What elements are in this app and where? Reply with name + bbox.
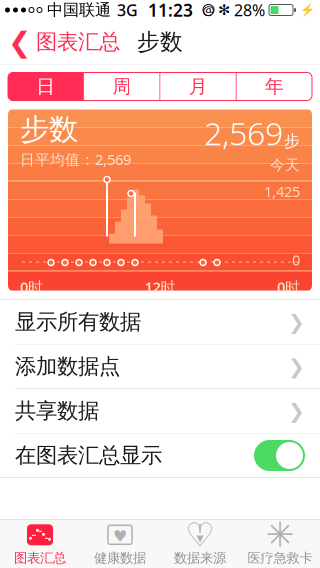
staticText: 图表汇总 (14, 550, 66, 566)
staticText: 医疗急救卡 (247, 550, 312, 566)
staticText: 步 (284, 131, 300, 151)
staticText: 健康数据 (94, 550, 146, 566)
staticText: 今天 (270, 156, 300, 174)
staticText: 日平均值：2,569 (20, 149, 131, 169)
button[interactable]: 年 (237, 72, 312, 100)
staticText: 0时 (277, 277, 300, 296)
staticText: 3G (117, 0, 138, 21)
staticText: 在图表汇总显示 (15, 442, 162, 469)
staticText: ✻ (218, 2, 230, 18)
button[interactable]: 日 (8, 72, 83, 100)
staticText: ♥ (113, 527, 127, 545)
staticText: 步数 (137, 28, 183, 56)
staticText: 中国联通 (47, 0, 111, 20)
staticText: ❯ (288, 311, 305, 333)
staticText: ♡ (185, 516, 215, 554)
button[interactable]: 在图表汇总显示 (0, 433, 320, 477)
staticText: 0 (292, 250, 300, 269)
staticText: 0时 (20, 277, 43, 296)
button[interactable]: ❮ (0, 20, 128, 64)
button[interactable]: 显示所有数据 (0, 300, 320, 344)
staticText: @ (202, 1, 214, 19)
button[interactable]: 医疗急救卡 (240, 520, 320, 568)
button[interactable]: 月 (160, 72, 236, 100)
staticText: ▼ (196, 533, 203, 544)
staticText: 共享数据 (15, 398, 99, 424)
staticText: ❯ (288, 355, 305, 378)
staticText: ⚡ (300, 3, 315, 17)
staticText: 月 (189, 75, 208, 98)
button[interactable]: 添加数据点 (0, 344, 320, 388)
staticText: 显示所有数据 (15, 309, 141, 335)
button[interactable]: 图表汇总 (0, 520, 80, 568)
button[interactable]: 周 (84, 72, 159, 100)
staticText: 年 (265, 75, 284, 98)
staticText: 28% (234, 0, 265, 21)
button[interactable]: 共享数据 (0, 389, 320, 433)
staticText: 图表汇总 (36, 29, 120, 55)
staticText: 添加数据点 (15, 353, 120, 380)
staticText: 2,569 (204, 111, 283, 154)
button[interactable]: 健康数据 (80, 520, 160, 568)
button[interactable]: 数据来源 (160, 520, 240, 568)
staticText: 12时 (144, 277, 175, 296)
staticText: 11:23 (148, 0, 193, 21)
staticText: ❮ (8, 26, 31, 58)
staticText: 1,425 (264, 181, 300, 201)
staticText: 周 (112, 75, 131, 98)
staticText: ❯ (288, 400, 305, 422)
staticText: 步数 (20, 111, 78, 147)
staticText: 数据来源 (174, 550, 226, 566)
staticText: ✳ (265, 515, 294, 554)
staticText: 日 (36, 75, 55, 98)
